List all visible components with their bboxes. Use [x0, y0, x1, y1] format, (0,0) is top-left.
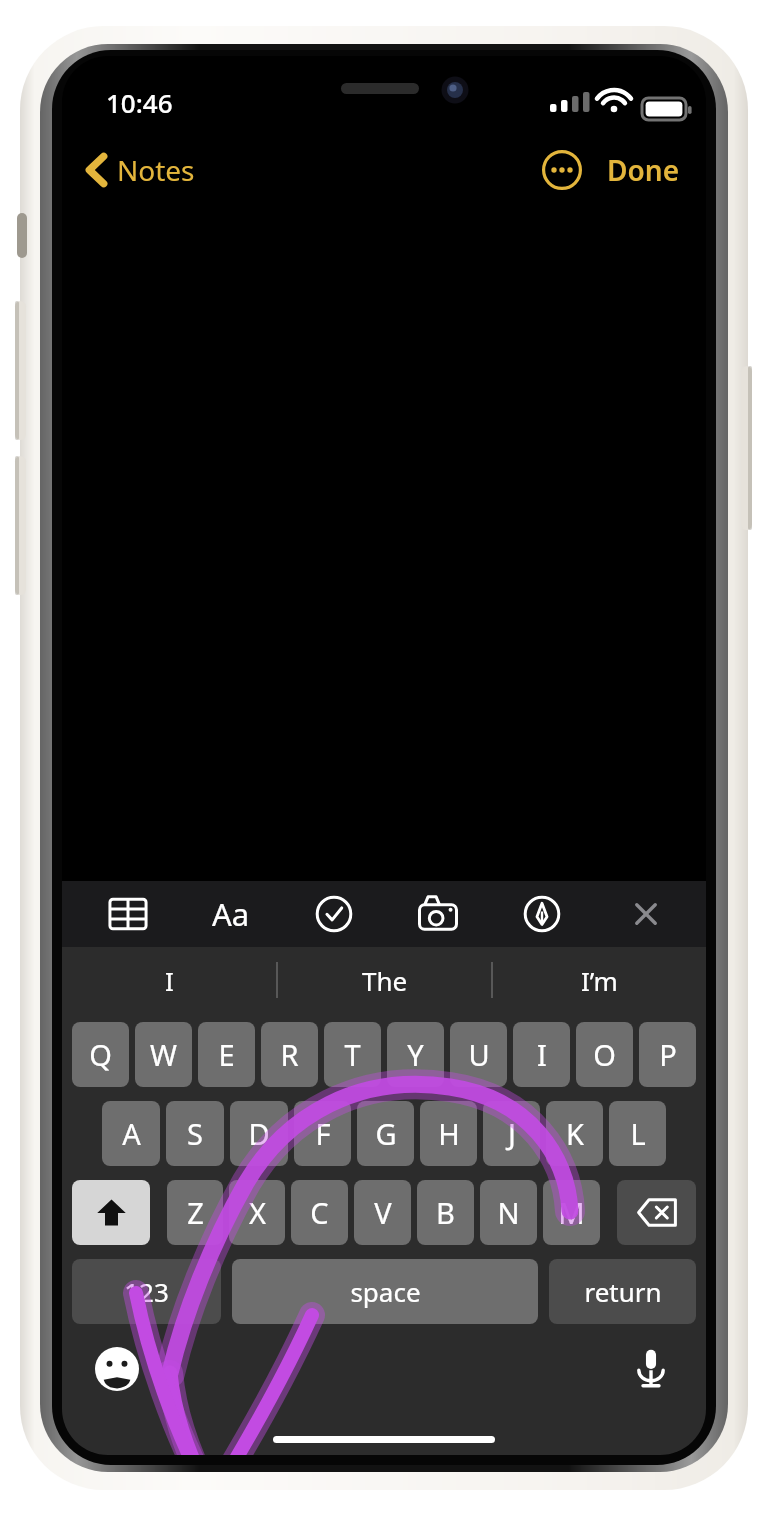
button[interactable]: E — [198, 1022, 255, 1087]
button[interactable]: Z — [167, 1180, 223, 1245]
button[interactable]: L — [609, 1101, 666, 1166]
button[interactable]: Emoji keyboard — [88, 1340, 146, 1398]
staticText: H — [438, 1114, 460, 1153]
button[interactable]: S — [166, 1101, 224, 1166]
button[interactable]: J — [483, 1101, 540, 1166]
button[interactable]: Done — [601, 145, 686, 195]
staticText: L — [630, 1114, 646, 1153]
button[interactable]: C — [291, 1180, 348, 1245]
button[interactable]: Insert table — [76, 881, 179, 947]
button[interactable]: Shift — [72, 1180, 150, 1245]
button[interactable]: P — [639, 1022, 696, 1087]
staticText: U — [468, 1035, 490, 1074]
button[interactable]: Delete — [617, 1180, 696, 1245]
staticText: B — [436, 1193, 455, 1232]
staticText: X — [249, 1193, 266, 1232]
staticText: D — [248, 1114, 270, 1153]
staticText: I — [537, 1035, 547, 1074]
staticText: Z — [187, 1193, 204, 1232]
button[interactable]: K — [546, 1101, 603, 1166]
staticText: V — [374, 1193, 392, 1232]
staticText: The — [362, 963, 408, 998]
staticText: Done — [607, 151, 680, 189]
staticText: P — [659, 1035, 677, 1074]
staticText: K — [566, 1114, 584, 1153]
button[interactable]: R — [261, 1022, 318, 1087]
button[interactable]: I — [62, 947, 276, 1013]
staticText: space — [350, 1274, 421, 1309]
button[interactable]: More options — [535, 143, 589, 197]
staticText: N — [497, 1193, 520, 1232]
button[interactable]: Notes — [80, 145, 201, 195]
staticText: I’m — [581, 963, 618, 998]
staticText: 10:46 — [106, 85, 173, 120]
staticText: G — [375, 1114, 397, 1153]
button[interactable]: F — [294, 1101, 351, 1166]
staticText: E — [218, 1035, 235, 1074]
button[interactable]: I’m — [493, 947, 706, 1013]
button[interactable]: T — [324, 1022, 381, 1087]
button[interactable]: Y — [387, 1022, 444, 1087]
staticText: 123 — [124, 1274, 169, 1309]
button[interactable]: M — [543, 1180, 600, 1245]
staticText: C — [310, 1193, 329, 1232]
button[interactable]: I — [513, 1022, 570, 1087]
staticText: W — [150, 1035, 177, 1074]
staticText: Aa — [212, 893, 250, 935]
staticText: R — [280, 1035, 299, 1074]
staticText: Notes — [117, 151, 195, 189]
staticText: S — [187, 1114, 203, 1153]
staticText: T — [344, 1035, 361, 1074]
button[interactable]: Text format — [179, 881, 282, 947]
button[interactable]: return — [549, 1259, 696, 1324]
button[interactable]: Dictation — [622, 1340, 680, 1398]
button[interactable]: U — [450, 1022, 507, 1087]
button[interactable]: Q — [72, 1022, 129, 1087]
button[interactable]: Markup — [490, 881, 594, 947]
button[interactable]: G — [357, 1101, 414, 1166]
button[interactable]: D — [230, 1101, 288, 1166]
staticText: O — [593, 1035, 616, 1074]
button[interactable]: Checklist — [282, 881, 386, 947]
button[interactable]: 123 — [72, 1259, 221, 1324]
staticText: Y — [407, 1035, 424, 1074]
button[interactable]: X — [229, 1180, 285, 1245]
button[interactable]: The — [278, 947, 491, 1013]
button[interactable]: A — [102, 1101, 160, 1166]
button[interactable]: W — [135, 1022, 192, 1087]
button[interactable]: V — [354, 1180, 411, 1245]
staticText: return — [584, 1274, 662, 1309]
button[interactable]: Camera — [386, 881, 490, 947]
staticText: M — [558, 1193, 585, 1232]
staticText: I — [165, 963, 174, 998]
button[interactable]: B — [417, 1180, 474, 1245]
button[interactable]: H — [420, 1101, 477, 1166]
button[interactable]: space — [232, 1259, 538, 1324]
button[interactable]: Close keyboard — [594, 881, 698, 947]
staticText: J — [508, 1114, 516, 1153]
button[interactable]: N — [480, 1180, 537, 1245]
staticText: Q — [89, 1035, 112, 1074]
staticText: A — [122, 1114, 141, 1153]
button[interactable]: O — [576, 1022, 633, 1087]
staticText: F — [315, 1114, 331, 1153]
